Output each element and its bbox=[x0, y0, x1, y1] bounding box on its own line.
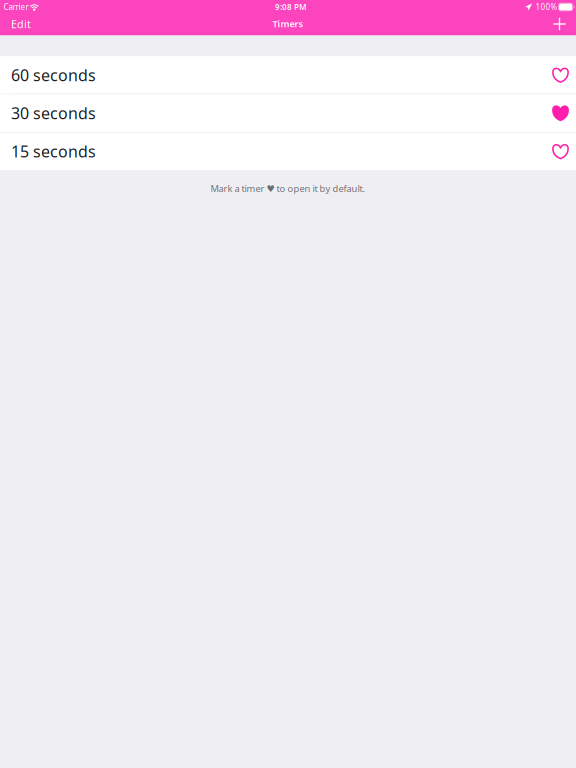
staticText: 30 seconds bbox=[11, 102, 96, 124]
staticText: 9:08 PM bbox=[275, 2, 306, 12]
staticText: 60 seconds bbox=[11, 64, 96, 85]
button[interactable]: 60 seconds bbox=[0, 56, 576, 94]
staticText: Edit bbox=[11, 17, 31, 31]
button[interactable]: Unmark 30 seconds as the default timer bbox=[549, 94, 571, 132]
button[interactable]: Add timer bbox=[548, 14, 571, 35]
staticText: 15 seconds bbox=[11, 141, 96, 162]
button[interactable]: 15 seconds bbox=[0, 133, 576, 170]
button[interactable]: 30 seconds bbox=[0, 94, 576, 132]
button[interactable]: Edit bbox=[4, 14, 39, 35]
button[interactable]: Mark 15 seconds as the default timer bbox=[549, 133, 571, 170]
button[interactable]: Mark 60 seconds as the default timer bbox=[549, 56, 571, 94]
staticText: Mark a timer ♥ to open it by default. bbox=[210, 182, 365, 194]
staticText: 100% bbox=[535, 2, 557, 12]
staticText: Timers bbox=[272, 18, 303, 30]
staticText: Carrier bbox=[3, 2, 28, 12]
